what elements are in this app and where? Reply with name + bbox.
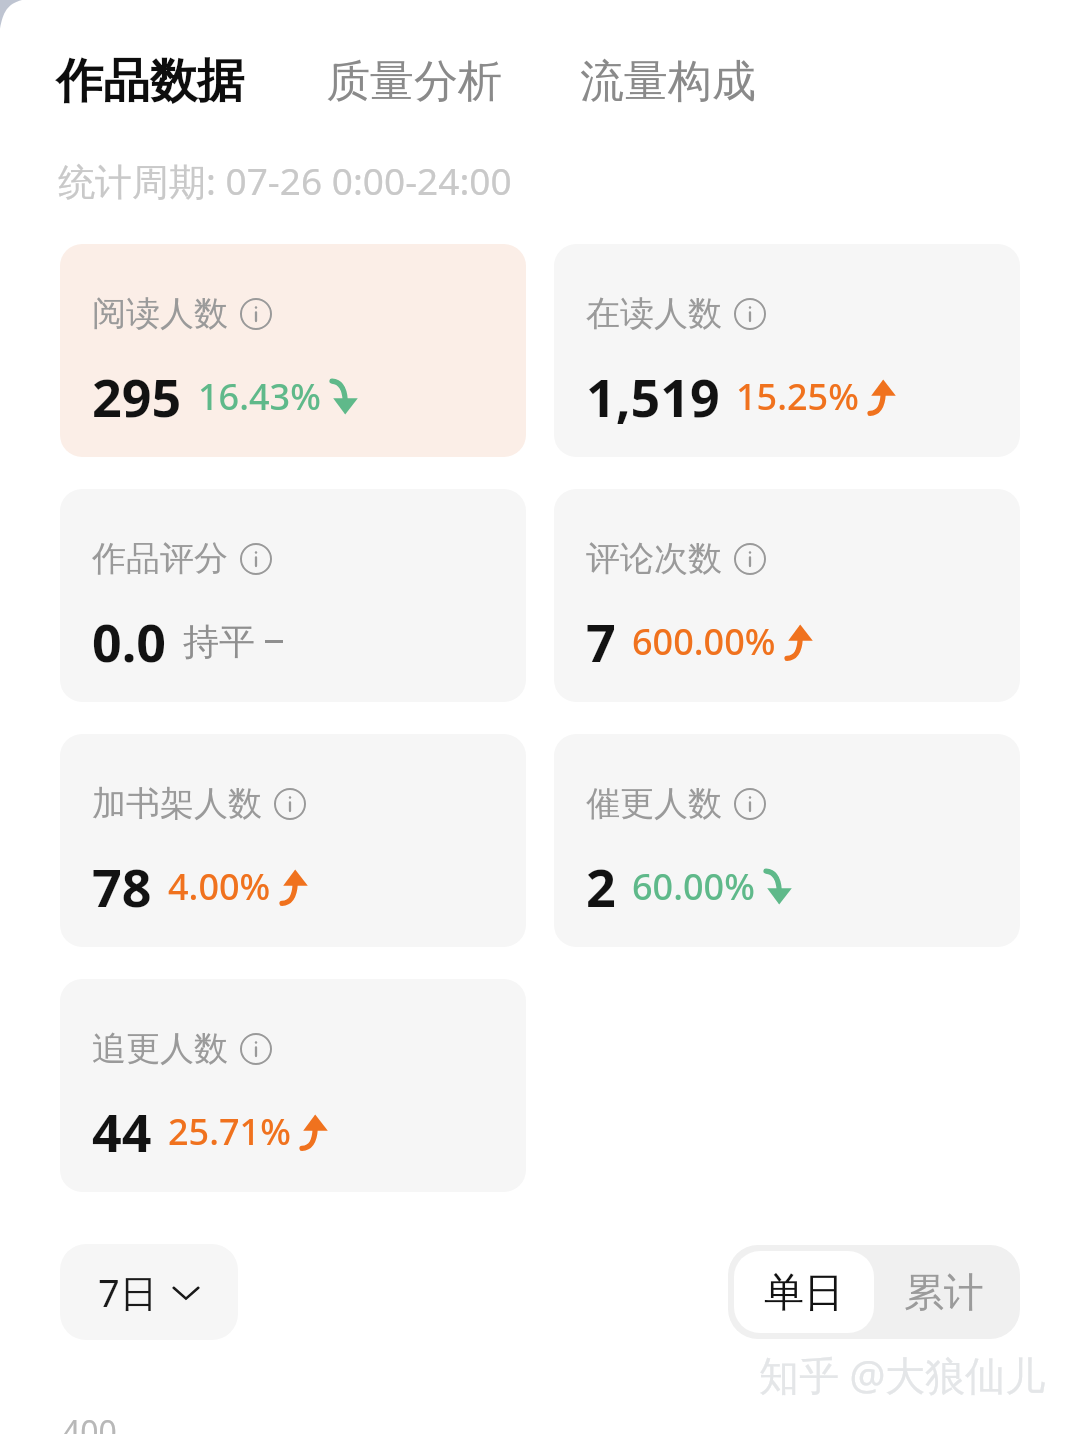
staticText: 知乎 @大狼仙儿 <box>759 1347 1046 1402</box>
staticText: 单日 <box>764 1267 844 1317</box>
button[interactable]: 追更人数 <box>60 979 526 1192</box>
staticText: 7日 <box>98 1266 158 1318</box>
staticText: 78 <box>92 851 152 922</box>
staticText: 累计 <box>904 1267 984 1317</box>
staticText: 加书架人数 <box>92 782 262 825</box>
staticText: 295 <box>92 361 182 432</box>
button[interactable]: 累计 <box>874 1251 1014 1333</box>
other: Info <box>240 1033 272 1065</box>
staticText: 阅读人数 <box>92 292 228 335</box>
button[interactable]: 作品评分 <box>60 489 526 702</box>
staticText: 44 <box>92 1096 152 1167</box>
staticText: 在读人数 <box>586 292 722 335</box>
staticText: 7 <box>586 606 616 677</box>
staticText: 2 <box>586 851 616 922</box>
staticText: 25.71% <box>168 1107 291 1156</box>
button[interactable]: 评论次数 <box>554 489 1020 702</box>
other: Info <box>734 543 766 575</box>
other: Info <box>240 543 272 575</box>
staticText: 持平 <box>183 619 255 664</box>
staticText: 1,519 <box>586 361 720 432</box>
other: Info <box>734 298 766 330</box>
button[interactable]: 流量构成 <box>580 54 756 109</box>
staticText: 作品数据 <box>56 52 244 111</box>
button[interactable]: 作品数据 <box>56 52 244 111</box>
button[interactable]: 质量分析 <box>326 54 502 109</box>
staticText: 评论次数 <box>586 537 722 580</box>
other: Info <box>274 788 306 820</box>
other: Up <box>867 378 897 416</box>
button[interactable]: 在读人数 <box>554 244 1020 457</box>
other: Up <box>784 623 814 661</box>
staticText: 流量构成 <box>580 54 756 109</box>
staticText: 400 <box>62 1410 117 1434</box>
staticText: 60.00% <box>632 862 755 911</box>
other: Info <box>734 788 766 820</box>
button[interactable]: 7日 <box>60 1244 238 1340</box>
staticText: 0.0 <box>92 606 167 677</box>
other: Down <box>763 868 793 906</box>
other: Info <box>240 298 272 330</box>
staticText: 600.00% <box>632 617 776 666</box>
other: Up <box>279 868 309 906</box>
button[interactable]: 加书架人数 <box>60 734 526 947</box>
staticText: 15.25% <box>736 372 859 421</box>
staticText: 作品评分 <box>92 537 228 580</box>
other: Down <box>329 378 359 416</box>
staticText: 追更人数 <box>92 1027 228 1070</box>
button[interactable]: 单日 <box>734 1251 874 1333</box>
staticText: 4.00% <box>168 862 271 911</box>
staticText: 质量分析 <box>326 54 502 109</box>
staticText: 统计周期: 07-26 0:00-24:00 <box>58 155 512 206</box>
staticText: 催更人数 <box>586 782 722 825</box>
button[interactable]: 阅读人数 <box>60 244 526 457</box>
staticText: 16.43% <box>198 372 321 421</box>
other: Up <box>299 1113 329 1151</box>
button[interactable]: 催更人数 <box>554 734 1020 947</box>
